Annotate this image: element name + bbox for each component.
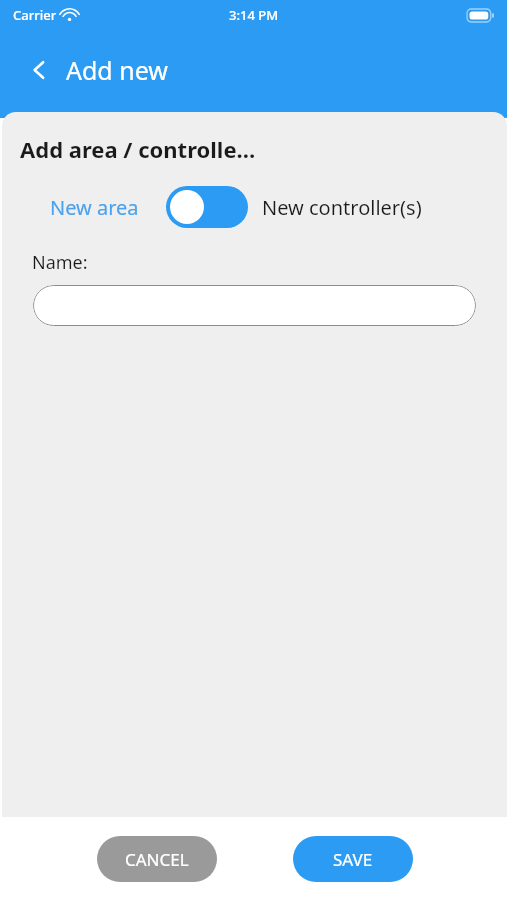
staticText: Carrier: [13, 6, 57, 24]
button[interactable]: Back: [18, 49, 60, 91]
button[interactable]: SAVE: [293, 836, 413, 882]
staticText: Name:: [32, 250, 88, 275]
button[interactable]: New area: [50, 194, 139, 221]
button[interactable]: Toggle area or controller: [166, 186, 248, 228]
button[interactable]: CANCEL: [97, 836, 217, 882]
staticText: CANCEL: [125, 848, 189, 871]
staticText: Add area / controlle…: [20, 134, 256, 164]
staticText: SAVE: [333, 848, 373, 871]
button[interactable]: New controller(s): [262, 194, 422, 221]
staticText: 3:14 PM: [229, 6, 279, 24]
button[interactable]: Name input field: [33, 285, 476, 326]
staticText: Add new: [66, 53, 168, 87]
